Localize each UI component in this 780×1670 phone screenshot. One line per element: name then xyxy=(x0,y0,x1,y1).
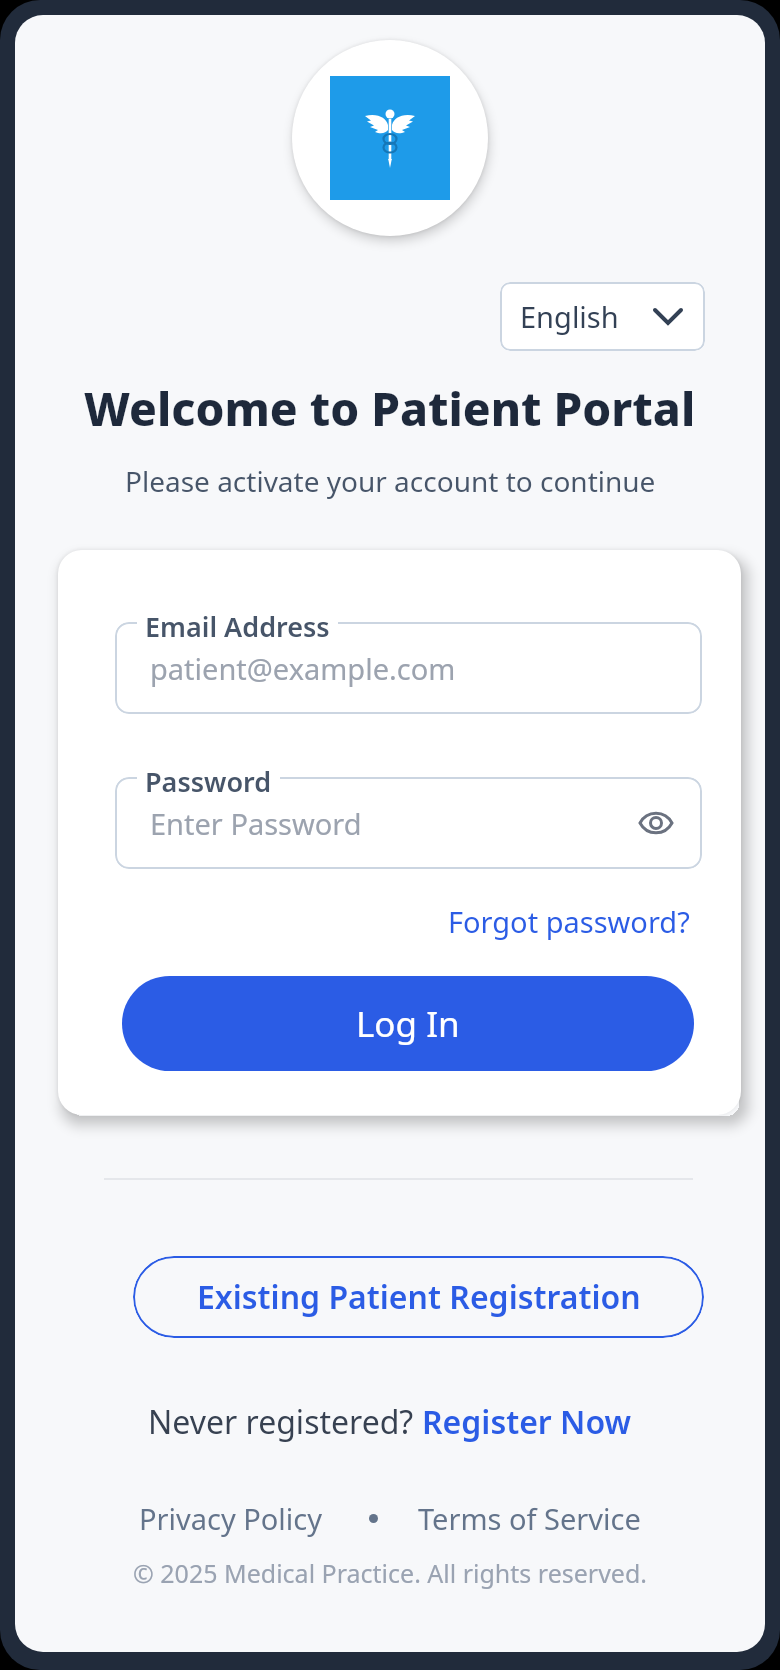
button[interactable]: English xyxy=(500,282,705,351)
button[interactable]: Terms of Service xyxy=(418,1499,641,1538)
staticText: Privacy Policy xyxy=(139,1499,323,1538)
staticText: Welcome to Patient Portal xyxy=(84,377,696,440)
staticText: patient@example.com xyxy=(150,649,456,688)
button[interactable]: Existing Patient Registration xyxy=(133,1256,704,1338)
staticText: Terms of Service xyxy=(418,1499,641,1538)
button[interactable]: patient@example.com xyxy=(115,622,702,714)
button[interactable]: Enter Password xyxy=(115,777,702,869)
staticText: Register Now xyxy=(422,1400,632,1444)
staticText: English xyxy=(520,297,619,336)
staticText: Never registered? xyxy=(148,1400,422,1444)
staticText: © 2025 Medical Practice. All rights rese… xyxy=(133,1556,648,1590)
staticText: Please activate your account to continue xyxy=(125,462,656,500)
button[interactable]: Log In xyxy=(122,976,694,1071)
button[interactable] xyxy=(638,810,674,836)
button[interactable]: Privacy Policy xyxy=(139,1499,323,1538)
staticText: Existing Patient Registration xyxy=(197,1275,641,1319)
staticText: Password xyxy=(145,763,272,800)
staticText: Forgot password? xyxy=(448,902,690,941)
staticText: Log In xyxy=(356,1000,460,1048)
button[interactable]: Register Now xyxy=(422,1400,632,1444)
staticText: Enter Password xyxy=(150,804,362,843)
button[interactable]: Forgot password? xyxy=(448,902,690,941)
staticText: Email Address xyxy=(145,608,330,645)
